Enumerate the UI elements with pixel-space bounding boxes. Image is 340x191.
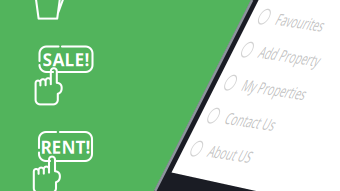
button[interactable]: Contact Us (0, 95, 200, 126)
staticText: My Properties (44, 69, 139, 89)
staticText: RENT! (40, 135, 90, 158)
button[interactable]: My Properties (0, 63, 200, 95)
staticText: Favourites (44, 6, 115, 26)
staticText: Contact Us (44, 101, 118, 120)
staticText: Add Property (44, 38, 134, 57)
button[interactable]: Favourites (0, 0, 200, 32)
button[interactable]: Add Property (0, 32, 200, 63)
staticText: About US (44, 133, 108, 152)
staticText: SALE! (42, 48, 89, 71)
button[interactable]: About US (0, 127, 200, 158)
